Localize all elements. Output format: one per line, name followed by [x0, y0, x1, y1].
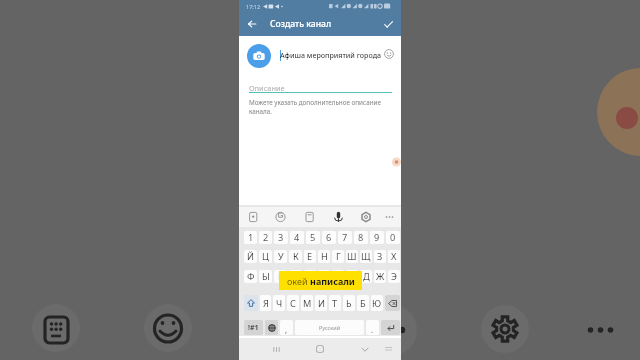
button[interactable]: Back	[239, 12, 265, 36]
button[interactable]: З	[374, 250, 386, 263]
button[interactable]: 4	[290, 231, 304, 244]
staticText: Ш	[347, 250, 357, 263]
button[interactable]: Л	[346, 270, 358, 283]
staticText: .	[371, 324, 374, 335]
button[interactable]: Recents	[270, 343, 282, 355]
button[interactable]: Б	[357, 295, 369, 311]
button[interactable]: Щ	[360, 250, 372, 263]
staticText: Русский	[319, 324, 341, 331]
button[interactable]: 8	[354, 231, 368, 244]
staticText: Р	[321, 270, 327, 283]
button[interactable]: Х	[388, 250, 400, 263]
staticText: Щ	[361, 250, 371, 263]
button[interactable]: У	[274, 250, 287, 263]
staticText: В	[278, 270, 284, 283]
button[interactable]: Ш	[346, 250, 358, 263]
button[interactable]: К	[289, 250, 302, 263]
staticText: Ф	[247, 270, 255, 283]
button[interactable]: .	[366, 320, 379, 335]
button[interactable]: Й	[244, 250, 257, 263]
staticText: ,	[285, 324, 288, 335]
button[interactable]: С	[287, 295, 299, 311]
staticText: Х	[391, 250, 397, 263]
staticText: Д	[363, 270, 370, 283]
button[interactable]: Ч	[273, 295, 285, 311]
button[interactable]: 2	[259, 231, 272, 244]
staticText: А	[293, 270, 299, 283]
button[interactable]: Done	[375, 12, 401, 36]
button[interactable]: 0	[386, 231, 400, 244]
staticText: Н	[321, 250, 328, 263]
staticText: 2	[263, 231, 269, 244]
staticText: Ь	[346, 297, 352, 310]
button[interactable]: Н	[318, 250, 330, 263]
staticText: 5	[310, 231, 316, 244]
staticText: О	[335, 270, 342, 283]
button[interactable]: М	[301, 295, 313, 311]
button[interactable]: Ю	[371, 295, 383, 311]
staticText: Й	[247, 250, 254, 263]
staticText: 8	[358, 231, 364, 244]
button[interactable]: Русский	[295, 320, 364, 335]
staticText: 1	[248, 231, 254, 244]
button[interactable]: Ы	[259, 270, 272, 283]
button[interactable]: Shift	[244, 295, 258, 311]
staticText: окей	[287, 275, 310, 287]
button[interactable]: Г	[332, 250, 344, 263]
staticText: Описание	[249, 83, 285, 93]
staticText: Ю	[372, 297, 382, 310]
button[interactable]: Set channel photo	[247, 44, 271, 68]
button[interactable]: А	[289, 270, 302, 283]
button[interactable]: 5	[306, 231, 320, 244]
staticText: Б	[360, 297, 366, 310]
staticText: 0	[390, 231, 396, 244]
button[interactable]: Ф	[244, 270, 257, 283]
staticText: Е	[307, 250, 313, 263]
button[interactable]: Hide keyboard	[359, 343, 371, 355]
button[interactable]: 6	[322, 231, 336, 244]
button[interactable]: !#1	[244, 320, 263, 335]
button[interactable]: Р	[318, 270, 330, 283]
button[interactable]: Backspace	[385, 295, 400, 311]
button[interactable]: О	[332, 270, 344, 283]
button[interactable]: И	[315, 295, 327, 311]
button[interactable]: Ц	[259, 250, 272, 263]
button[interactable]: Change keyboard language	[265, 320, 278, 335]
button[interactable]: Enter	[381, 320, 400, 335]
button[interactable]: В	[274, 270, 287, 283]
staticText: Г	[336, 250, 341, 263]
staticText: К	[293, 250, 299, 263]
button[interactable]: Я	[260, 295, 271, 311]
staticText: И	[318, 297, 325, 310]
button[interactable]: ,	[280, 320, 293, 335]
staticText: !#1	[248, 323, 259, 333]
button[interactable]: 7	[338, 231, 352, 244]
staticText: З	[377, 250, 383, 263]
staticText: Ч	[276, 297, 283, 310]
button[interactable]: 9	[370, 231, 384, 244]
button[interactable]: Д	[360, 270, 372, 283]
button[interactable]: Emoji	[381, 46, 397, 62]
staticText: Л	[349, 270, 356, 283]
button[interactable]: окей	[279, 271, 362, 290]
staticText: У	[278, 250, 284, 263]
staticText: С	[290, 297, 296, 310]
button[interactable]: Т	[329, 295, 341, 311]
button[interactable]: Home	[313, 342, 327, 356]
staticText: 4	[294, 231, 300, 244]
button[interactable]: Ь	[343, 295, 355, 311]
button[interactable]: П	[304, 270, 316, 283]
staticText: 7	[342, 231, 348, 244]
staticText: Я	[263, 297, 269, 310]
staticText: Ж	[376, 270, 385, 283]
button[interactable]: 3	[274, 231, 288, 244]
button[interactable]: Ж	[374, 270, 386, 283]
button[interactable]: Э	[388, 270, 400, 283]
button[interactable]: 1	[244, 231, 257, 244]
staticText: Афиша мероприятий города	[280, 50, 382, 60]
staticText: Можете указать дополнительное описание к…	[249, 98, 381, 116]
staticText: Т	[332, 297, 338, 310]
staticText: Ц	[262, 250, 269, 263]
staticText: 3	[278, 231, 284, 244]
button[interactable]: Е	[304, 250, 316, 263]
